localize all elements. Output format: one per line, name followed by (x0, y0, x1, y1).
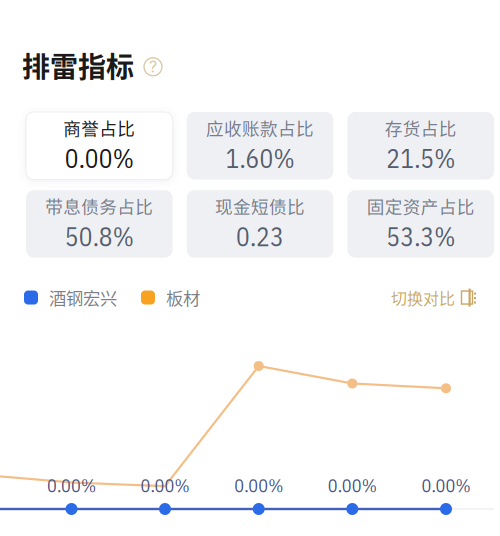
button[interactable]: 商誉占比 (26, 112, 173, 179)
staticText: 酒钢宏兴 (49, 285, 117, 310)
staticText: 0.00% (234, 474, 283, 497)
staticText: 商誉占比 (63, 115, 135, 140)
staticText: 0.00% (421, 474, 470, 497)
button[interactable]: 切换对比 (391, 286, 478, 309)
staticText: 固定资产占比 (367, 193, 475, 219)
button[interactable]: 带息债务占比 (26, 190, 173, 258)
button[interactable]: 固定资产占比 (347, 190, 494, 258)
staticText: 0.23 (236, 220, 284, 253)
staticText: 0.00% (328, 474, 377, 497)
staticText: 切换对比 (391, 286, 455, 309)
staticText: 0.00% (47, 474, 96, 497)
staticText: 0.00% (65, 142, 134, 175)
staticText: 排雷指标 (22, 45, 134, 85)
staticText: 53.3% (386, 220, 455, 253)
staticText: 板材 (166, 285, 200, 310)
staticText: 21.5% (386, 142, 455, 175)
button[interactable]: 存货占比 (347, 112, 494, 179)
staticText: 1.60% (225, 142, 294, 175)
button[interactable]: 现金短债比 (187, 190, 333, 258)
staticText: 0.00% (140, 474, 189, 497)
staticText: 存货占比 (385, 115, 457, 140)
staticText: 50.8% (65, 220, 134, 253)
staticText: 带息债务占比 (45, 193, 153, 219)
staticText: 应收账款占比 (206, 115, 314, 140)
button[interactable]: 帮助 (144, 56, 162, 74)
staticText: ? (149, 57, 157, 76)
button[interactable]: 应收账款占比 (187, 112, 333, 179)
staticText: 现金短债比 (215, 193, 305, 219)
